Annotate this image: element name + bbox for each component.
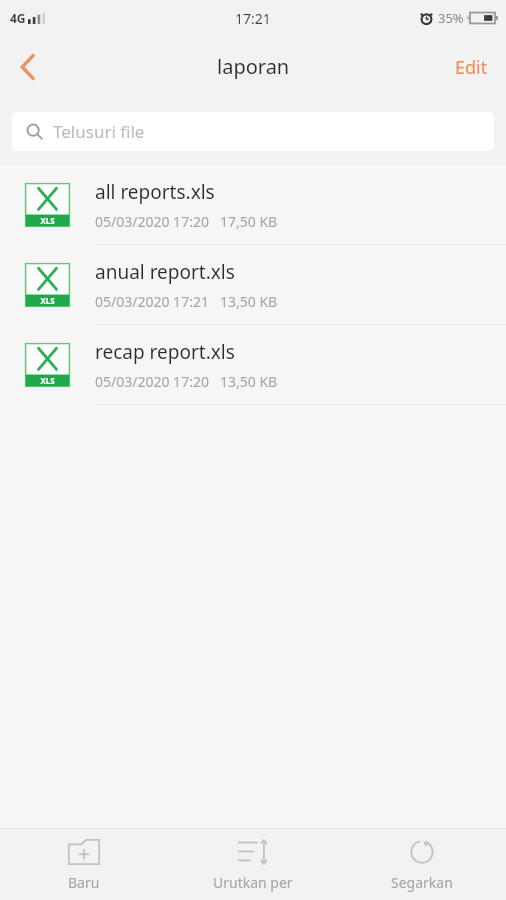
staticText: 35% xyxy=(438,9,464,27)
staticText: laporan xyxy=(217,53,290,80)
staticText: XLS xyxy=(40,215,55,226)
button[interactable]: Urutkan per xyxy=(168,829,337,900)
staticText: 4G xyxy=(10,10,26,26)
staticText: 17,50 KB xyxy=(220,212,278,231)
staticText: 05/03/2020 17:21 xyxy=(95,292,209,311)
staticText: Segarkan xyxy=(391,873,453,892)
staticText: 13,50 KB xyxy=(220,292,278,311)
button[interactable]: XLS xyxy=(0,325,506,405)
staticText: 17:21 xyxy=(235,9,271,28)
staticText: Telusuri file xyxy=(53,120,145,143)
staticText: anual report.xls xyxy=(95,259,235,285)
button[interactable]: XLS xyxy=(0,165,506,245)
button[interactable]: Telusuri file xyxy=(12,112,494,151)
staticText: recap report.xls xyxy=(95,339,235,365)
staticText: all reports.xls xyxy=(95,179,215,205)
staticText: XLS xyxy=(40,295,55,306)
button[interactable]: Segarkan xyxy=(337,829,506,900)
staticText: Baru xyxy=(68,873,100,892)
staticText: Urutkan per xyxy=(213,873,293,892)
staticText: 05/03/2020 17:20 xyxy=(95,372,209,391)
button[interactable]: XLS xyxy=(0,245,506,325)
button[interactable]: Back xyxy=(0,39,56,95)
staticText: XLS xyxy=(40,375,55,386)
staticText: 05/03/2020 17:20 xyxy=(95,212,209,231)
staticText: 13,50 KB xyxy=(220,372,278,391)
staticText: Edit xyxy=(455,55,488,80)
button[interactable]: Edit xyxy=(437,39,506,95)
button[interactable]: Baru xyxy=(0,829,168,900)
